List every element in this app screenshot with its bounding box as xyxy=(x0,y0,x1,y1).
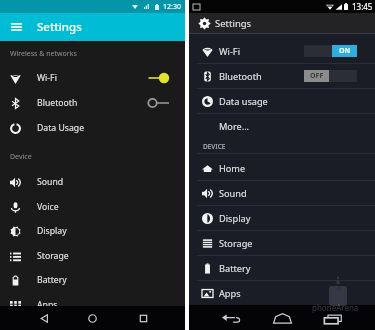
button[interactable]: Sound xyxy=(189,181,375,205)
button[interactable]: Home xyxy=(268,306,296,330)
button[interactable]: Battery xyxy=(189,256,375,280)
staticText: Apps xyxy=(37,299,58,311)
staticText: Apps xyxy=(219,287,241,300)
staticText: Wi-Fi xyxy=(219,45,241,58)
button[interactable]: Storage xyxy=(189,231,375,255)
staticText: OFF xyxy=(310,71,324,81)
button[interactable]: Apps xyxy=(189,281,375,305)
staticText: ON xyxy=(339,46,351,56)
staticText: Bluetooth xyxy=(219,70,262,83)
button[interactable]: Back xyxy=(30,306,58,330)
staticText: Display xyxy=(219,212,251,225)
button[interactable]: Home xyxy=(78,306,106,330)
button[interactable]: Battery xyxy=(0,268,185,292)
button[interactable]: Voice xyxy=(0,195,185,219)
staticText: Device xyxy=(10,152,32,162)
button[interactable]: Sound xyxy=(0,170,185,194)
staticText: Sound xyxy=(37,176,64,188)
button[interactable]: Apps xyxy=(0,293,185,317)
staticText: Data usage xyxy=(219,95,268,108)
button[interactable]: Storage xyxy=(0,244,185,268)
button[interactable]: Wi-Fi xyxy=(0,66,185,90)
staticText: Storage xyxy=(37,250,69,262)
staticText: Home xyxy=(219,162,246,175)
staticText: Display xyxy=(37,225,67,237)
button[interactable]: Home xyxy=(189,156,375,180)
button[interactable]: Open navigation drawer xyxy=(6,17,26,37)
staticText: 13:45 xyxy=(352,1,373,12)
staticText: DEVICE xyxy=(203,142,226,151)
button[interactable]: Recent apps xyxy=(319,306,347,330)
button[interactable]: Display xyxy=(189,206,375,230)
staticText: 12:30 xyxy=(163,2,181,12)
staticText: Settings xyxy=(37,19,82,35)
staticText: Voice xyxy=(37,201,59,213)
button[interactable]: Bluetooth xyxy=(189,64,375,88)
button[interactable]: Recent apps xyxy=(129,306,157,330)
staticText: Battery xyxy=(37,274,67,286)
staticText: Bluetooth xyxy=(37,97,78,109)
staticText: Wireless & networks xyxy=(10,49,77,59)
button[interactable]: Data usage xyxy=(189,89,375,113)
staticText: phoneArena xyxy=(312,302,359,313)
button[interactable]: More... xyxy=(189,114,375,138)
staticText: Wi-Fi xyxy=(37,72,57,84)
button[interactable]: Back xyxy=(217,306,245,330)
button[interactable]: Wi-Fi xyxy=(189,39,375,63)
button[interactable]: Data Usage xyxy=(0,116,185,140)
staticText: More... xyxy=(219,120,250,133)
button[interactable]: Display xyxy=(0,219,185,243)
staticText: Data Usage xyxy=(37,122,85,134)
staticText: Storage xyxy=(219,237,253,250)
button[interactable]: Bluetooth xyxy=(0,91,185,115)
staticText: Sound xyxy=(219,187,247,200)
staticText: Battery xyxy=(219,262,251,275)
staticText: Settings xyxy=(215,17,252,30)
